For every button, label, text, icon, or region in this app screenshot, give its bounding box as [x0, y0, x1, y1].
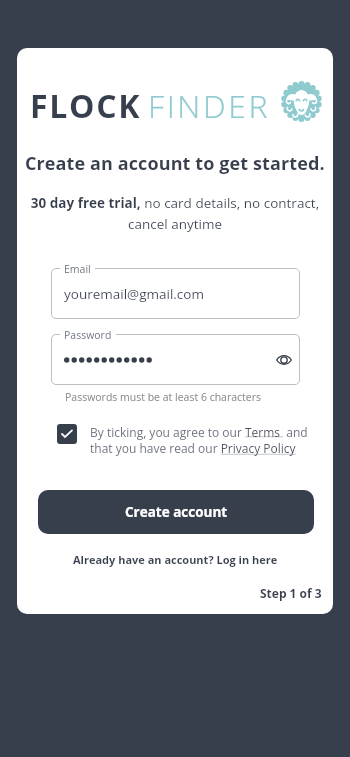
staticText: Email — [64, 262, 91, 276]
button[interactable]: By ticking, you agree to our Terms and t… — [57, 424, 314, 457]
staticText: Create an account to get started. — [25, 151, 325, 176]
button[interactable]: Show password — [51, 334, 300, 385]
staticText: youremail@gmail.com — [64, 285, 204, 303]
staticText: 30 day free trial, no card details, no c… — [25, 194, 325, 233]
staticText: By ticking, you agree to our Terms and t… — [90, 424, 314, 457]
staticText: Passwords must be at least 6 characters — [65, 390, 262, 404]
staticText: FINDER — [148, 84, 271, 128]
button[interactable]: Create account — [38, 490, 314, 534]
staticText: FLOCK — [30, 84, 142, 128]
button[interactable]: Show password — [273, 349, 295, 371]
staticText: Step 1 of 3 — [260, 585, 322, 601]
staticText: Create account — [125, 503, 228, 521]
button[interactable]: Already have an account? Log in here — [73, 552, 278, 567]
staticText: Password — [64, 328, 112, 342]
button[interactable]: youremail@gmail.com — [51, 268, 300, 319]
